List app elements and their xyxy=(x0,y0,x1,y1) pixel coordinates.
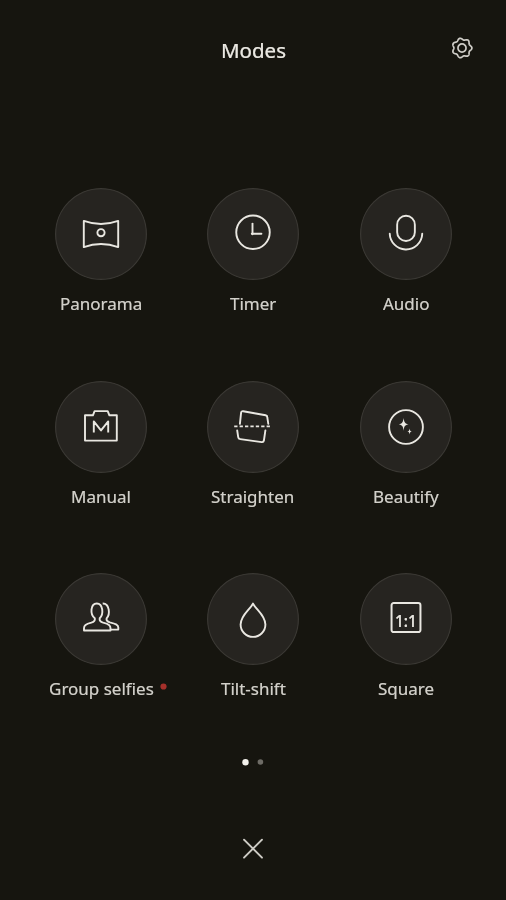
staticText: Manual xyxy=(71,485,131,507)
staticText: Modes xyxy=(221,36,286,64)
staticText: Tilt-shift xyxy=(221,677,286,699)
button[interactable]: Timer xyxy=(181,186,325,316)
staticText: Straighten xyxy=(211,485,295,507)
button[interactable]: Straighten xyxy=(181,379,325,509)
button[interactable]: Group selfies xyxy=(29,571,173,701)
button[interactable]: Settings xyxy=(440,26,484,70)
button[interactable]: Manual xyxy=(29,379,173,509)
staticText: Timer xyxy=(230,292,277,314)
staticText: Beautify xyxy=(373,485,439,507)
button[interactable]: Tilt-shift xyxy=(181,571,325,701)
button[interactable]: Close xyxy=(229,824,277,872)
button[interactable]: Beautify xyxy=(334,379,478,509)
button[interactable]: Audio xyxy=(334,186,478,316)
staticText: Audio xyxy=(383,292,430,314)
staticText: Panorama xyxy=(60,292,143,314)
staticText: 1:1 xyxy=(395,610,417,631)
button[interactable]: Panorama xyxy=(29,186,173,316)
staticText: Square xyxy=(378,677,435,699)
button[interactable]: 1:1 xyxy=(334,571,478,701)
staticText: Group selfies xyxy=(49,677,154,699)
button[interactable]: Modes xyxy=(153,30,353,70)
